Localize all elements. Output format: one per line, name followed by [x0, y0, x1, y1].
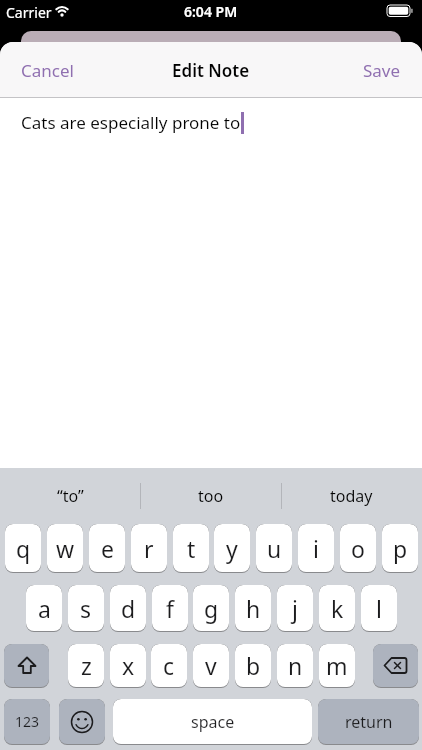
button[interactable]: w: [47, 524, 83, 573]
staticText: l: [376, 593, 382, 624]
staticText: w: [56, 533, 75, 564]
button[interactable]: “to”: [0, 468, 140, 524]
button[interactable]: q: [5, 524, 41, 573]
button[interactable]: y: [214, 524, 250, 573]
staticText: h: [246, 593, 261, 624]
staticText: u: [267, 533, 282, 564]
staticText: “to”: [57, 485, 84, 507]
button[interactable]: x: [110, 644, 146, 688]
button[interactable]: r: [131, 524, 167, 573]
button[interactable]: z: [68, 644, 104, 688]
staticText: 6:04 PM: [184, 2, 238, 21]
button[interactable]: b: [235, 644, 271, 688]
staticText: x: [122, 650, 135, 681]
staticText: Cats are especially prone to: [21, 111, 241, 134]
button[interactable]: c: [151, 644, 187, 688]
staticText: Cancel: [21, 59, 74, 82]
button[interactable]: o: [340, 524, 376, 573]
staticText: 123: [15, 712, 40, 731]
staticText: a: [38, 593, 51, 624]
button[interactable]: return: [318, 699, 419, 745]
button[interactable]: j: [277, 585, 313, 632]
button[interactable]: [373, 644, 418, 688]
button[interactable]: space: [113, 699, 312, 745]
staticText: too: [198, 485, 224, 507]
button[interactable]: s: [68, 585, 104, 632]
button[interactable]: k: [319, 585, 355, 632]
staticText: r: [144, 533, 154, 564]
staticText: e: [101, 533, 114, 564]
staticText: Carrier: [6, 3, 52, 22]
staticText: c: [163, 650, 175, 681]
staticText: g: [204, 593, 219, 624]
button[interactable]: Cancel: [0, 59, 74, 82]
staticText: Edit Note: [172, 59, 250, 82]
staticText: s: [80, 593, 92, 624]
staticText: p: [393, 533, 408, 564]
button[interactable]: m: [319, 644, 355, 688]
button[interactable]: l: [361, 585, 397, 632]
staticText: f: [166, 593, 174, 624]
staticText: today: [330, 485, 373, 507]
button[interactable]: a: [26, 585, 62, 632]
button[interactable]: t: [173, 524, 209, 573]
staticText: Save: [363, 59, 401, 82]
button[interactable]: [4, 644, 49, 688]
button[interactable]: f: [152, 585, 188, 632]
button[interactable]: n: [277, 644, 313, 688]
button[interactable]: p: [382, 524, 418, 573]
button[interactable]: 123: [4, 699, 50, 745]
button[interactable]: h: [235, 585, 271, 632]
staticText: t: [187, 533, 196, 564]
button[interactable]: u: [256, 524, 292, 573]
button[interactable]: d: [110, 585, 146, 632]
staticText: z: [81, 650, 92, 681]
button[interactable]: v: [193, 644, 229, 688]
staticText: j: [292, 593, 298, 624]
button[interactable]: e: [89, 524, 125, 573]
button[interactable]: too: [140, 468, 281, 524]
staticText: space: [191, 711, 235, 733]
staticText: y: [226, 533, 238, 564]
button[interactable]: today: [281, 468, 422, 524]
button[interactable]: i: [298, 524, 334, 573]
button[interactable]: Save: [363, 59, 422, 82]
button[interactable]: g: [193, 585, 229, 632]
staticText: v: [205, 650, 217, 681]
staticText: q: [16, 533, 31, 564]
staticText: b: [246, 650, 261, 681]
staticText: k: [331, 593, 344, 624]
staticText: return: [345, 711, 393, 733]
staticText: o: [351, 533, 365, 564]
staticText: m: [326, 650, 348, 681]
staticText: d: [121, 593, 136, 624]
staticText: n: [288, 650, 303, 681]
staticText: i: [313, 533, 319, 564]
button[interactable]: [59, 699, 105, 745]
